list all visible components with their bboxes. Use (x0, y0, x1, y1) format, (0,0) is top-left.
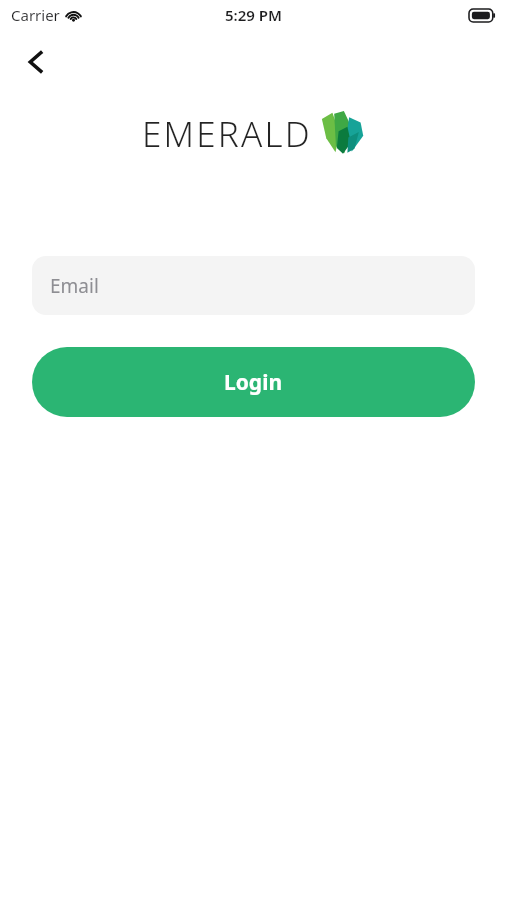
button[interactable]: Email (32, 256, 475, 315)
staticText: Login (224, 368, 283, 397)
staticText: EMERALD (142, 110, 312, 158)
button[interactable]: Back (12, 38, 60, 86)
staticText: Carrier (11, 5, 60, 25)
staticText: 5:29 PM (225, 5, 282, 25)
staticText: Email (50, 273, 99, 299)
button[interactable]: Login (32, 347, 475, 417)
